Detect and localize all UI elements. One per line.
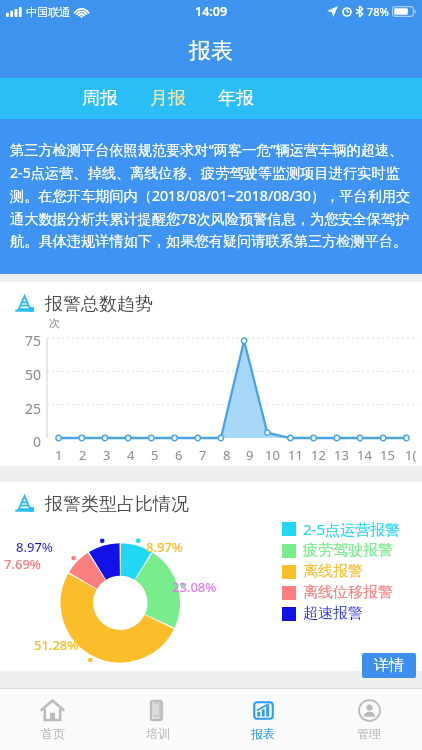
staticText: 8.97% <box>146 538 183 556</box>
button[interactable]: 首页 <box>0 689 105 750</box>
staticText: 报警类型占比情况 <box>45 493 189 516</box>
staticText: 1 <box>55 446 63 464</box>
staticText: 8 <box>223 446 231 464</box>
staticText: 月报 <box>150 87 186 110</box>
staticText: 3 <box>103 446 111 464</box>
staticText: 5 <box>151 446 159 464</box>
staticText: 报警总数趋势 <box>45 293 153 316</box>
staticText: 12 <box>311 446 326 464</box>
staticText: 管理 <box>357 726 381 741</box>
staticText: 离线报警 <box>303 562 363 581</box>
staticText: 9 <box>246 446 254 464</box>
staticText: 50 <box>25 365 42 384</box>
button[interactable]: 超速报警 <box>282 603 363 624</box>
staticText: 详情 <box>374 656 404 675</box>
button[interactable]: 报表 <box>210 689 316 750</box>
button[interactable]: 疲劳驾驶报警 <box>282 540 393 561</box>
staticText: 15 <box>380 446 395 464</box>
staticText: 报表 <box>189 37 233 65</box>
staticText: 51.28% <box>34 636 79 654</box>
staticText: 次 <box>49 316 60 330</box>
staticText: 报表 <box>251 726 275 741</box>
staticText: 1( <box>405 446 417 464</box>
staticText: 13 <box>334 446 349 464</box>
staticText: 8.97% <box>16 538 53 556</box>
staticText: 首页 <box>41 726 65 741</box>
staticText: 14:09 <box>195 3 228 20</box>
button[interactable]: 周报 <box>76 83 124 114</box>
staticText: 78% <box>367 4 389 19</box>
staticText: 10 <box>265 446 280 464</box>
staticText: 2 <box>79 446 87 464</box>
staticText: 11 <box>288 446 303 464</box>
button[interactable]: 详情 <box>362 653 416 678</box>
staticText: 中国联通 <box>26 5 70 19</box>
staticText: 培训 <box>146 726 170 741</box>
staticText: 23.08% <box>172 578 217 596</box>
staticText: 14 <box>357 446 372 464</box>
button[interactable]: 月报 <box>144 83 192 114</box>
staticText: 0 <box>33 432 42 451</box>
staticText: 离线位移报警 <box>303 583 393 602</box>
button[interactable]: 年报 <box>212 83 260 114</box>
staticText: 第三方检测平台依照规范要求对“两客一危”辆运营车辆的超速、2-5点运营、掉线、离… <box>10 140 413 250</box>
staticText: 7 <box>199 446 207 464</box>
staticText: 年报 <box>218 87 254 110</box>
staticText: 25 <box>25 399 42 418</box>
staticText: 4 <box>127 446 135 464</box>
staticText: 6 <box>175 446 183 464</box>
button[interactable]: 离线位移报警 <box>282 582 393 603</box>
staticText: 周报 <box>82 87 118 110</box>
staticText: 超速报警 <box>303 604 363 623</box>
staticText: 疲劳驾驶报警 <box>303 541 393 560</box>
button[interactable]: 管理 <box>316 689 422 750</box>
staticText: 75 <box>25 331 42 350</box>
staticText: 2-5点运营报警 <box>303 519 400 539</box>
staticText: 7.69% <box>4 555 41 573</box>
button[interactable]: 2-5点运营报警 <box>282 518 400 540</box>
button[interactable]: 培训 <box>105 689 210 750</box>
button[interactable]: 离线报警 <box>282 561 363 582</box>
